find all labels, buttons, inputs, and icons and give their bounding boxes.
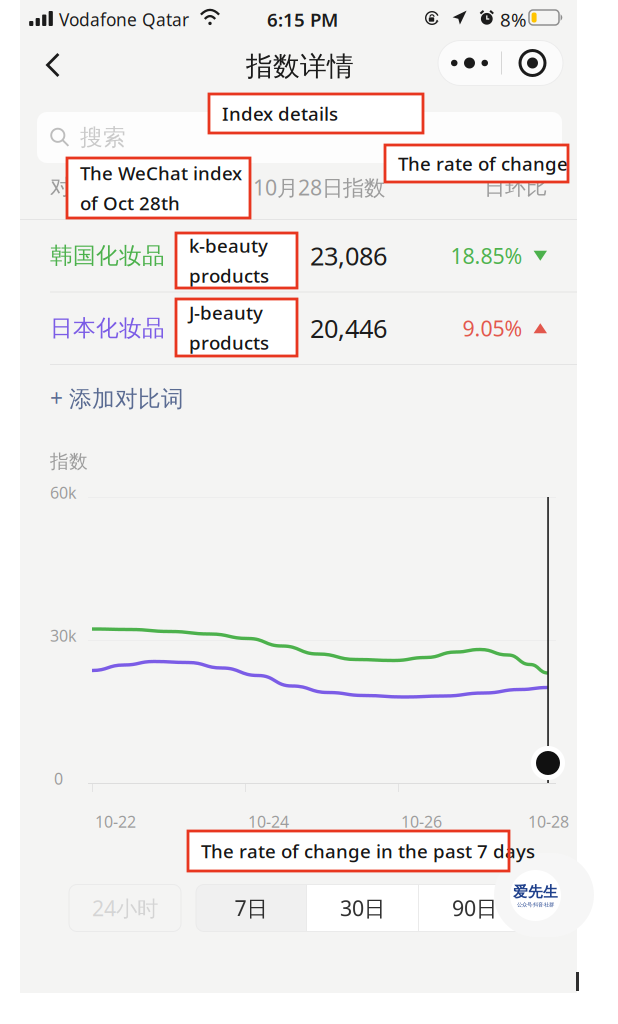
staticText: 30日	[340, 894, 385, 922]
staticText: 指数详情	[246, 50, 354, 83]
staticText: 9.05%	[463, 314, 523, 342]
button[interactable]: 30日	[307, 884, 418, 931]
staticText: + 添加对比词	[50, 383, 184, 413]
staticText: 30k	[50, 625, 77, 646]
staticText: of Oct 28th	[80, 190, 180, 215]
button[interactable]: 90日	[419, 884, 530, 931]
staticText: 日环比	[484, 174, 547, 200]
staticText: 8%	[500, 7, 527, 32]
button[interactable]: 7日	[196, 884, 306, 931]
staticText: 90日	[452, 894, 497, 922]
staticText: 韩国化妆品	[50, 242, 165, 270]
staticText: 爱先生	[513, 883, 558, 901]
staticText: products	[189, 330, 269, 355]
staticText: 18.85%	[451, 242, 523, 270]
staticText: 对比词	[50, 174, 113, 200]
staticText: 20,446	[310, 311, 387, 345]
staticText: 23,086	[310, 239, 387, 272]
button[interactable]: 24小时	[69, 884, 181, 931]
staticText: 7日	[234, 894, 267, 922]
staticText: Index details	[222, 101, 338, 126]
button[interactable]: Back	[31, 42, 75, 88]
staticText: 60k	[50, 482, 77, 503]
button[interactable]: More options	[438, 40, 501, 85]
button[interactable]: 搜索	[37, 112, 562, 163]
staticText: 日本化妆品	[50, 314, 165, 342]
staticText: The WeChat index	[80, 161, 242, 185]
button[interactable]: Close mini program	[502, 40, 563, 85]
staticText: 10-22	[95, 811, 136, 832]
staticText: 公众号·抖音·社群	[517, 901, 554, 908]
staticText: 24小时	[92, 894, 158, 922]
staticText: The rate of change	[398, 151, 568, 176]
staticText: 搜索	[80, 124, 126, 151]
staticText: Vodafone Qatar	[59, 8, 189, 31]
staticText: 10-28	[528, 811, 569, 832]
staticText: J-beauty	[189, 300, 263, 325]
staticText: 10-26	[401, 811, 442, 832]
staticText: k-beauty	[189, 233, 268, 258]
button[interactable]: 韩国化妆品	[20, 220, 577, 291]
staticText: products	[189, 263, 269, 288]
staticText: 10-24	[248, 811, 289, 832]
staticText: 指数	[50, 450, 88, 473]
staticText: 6:15 PM	[267, 7, 338, 32]
staticText: 10月28日指数	[253, 173, 385, 201]
staticText: 0	[54, 768, 63, 789]
button[interactable]: + 添加对比词	[20, 365, 577, 431]
staticText: The rate of change in the past 7 days	[201, 839, 535, 863]
button[interactable]: 日本化妆品	[20, 292, 577, 364]
